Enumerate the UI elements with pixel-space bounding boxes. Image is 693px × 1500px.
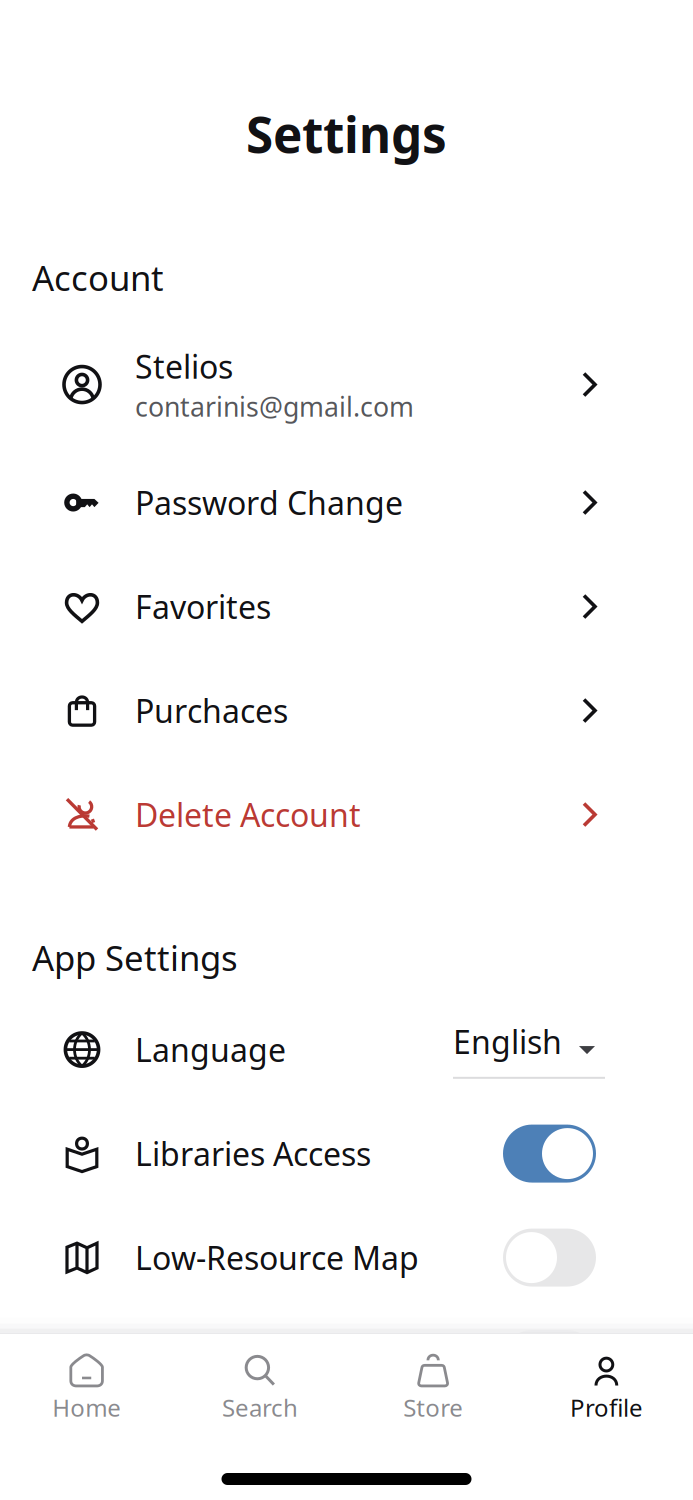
button[interactable]: Libraries Access <box>0 1102 693 1206</box>
button[interactable]: Purchaces <box>0 658 693 762</box>
staticText: Profile <box>570 1392 643 1423</box>
button[interactable]: Stelios <box>0 318 693 450</box>
staticText: Low-Resource Map <box>135 1236 419 1279</box>
button[interactable]: Delete Account <box>0 762 693 866</box>
staticText: App Settings <box>32 934 238 980</box>
button[interactable]: Store <box>346 1334 520 1438</box>
staticText: Language <box>135 1028 286 1071</box>
button[interactable]: Language <box>0 998 693 1102</box>
staticText: Delete Account <box>135 793 361 836</box>
button[interactable]: Password Change <box>0 450 693 554</box>
staticText: English <box>453 1020 562 1063</box>
staticText: contarinis@gmail.com <box>135 389 414 424</box>
button[interactable]: Home <box>0 1334 173 1438</box>
staticText: Search <box>222 1392 298 1423</box>
staticText: Home <box>52 1392 121 1423</box>
staticText: Purchaces <box>135 689 288 732</box>
staticText: Password Change <box>135 481 403 524</box>
button[interactable]: Search <box>173 1334 346 1438</box>
staticText: Stelios <box>135 345 233 388</box>
staticText: Libraries Access <box>135 1132 371 1175</box>
button[interactable]: Favorites <box>0 554 693 658</box>
staticText: Favorites <box>135 585 271 628</box>
button[interactable]: Profile <box>520 1334 693 1438</box>
staticText: Account <box>32 254 164 300</box>
button[interactable]: Low-Resource Map <box>0 1206 693 1310</box>
staticText: Settings <box>246 101 447 166</box>
staticText: Store <box>403 1392 463 1423</box>
